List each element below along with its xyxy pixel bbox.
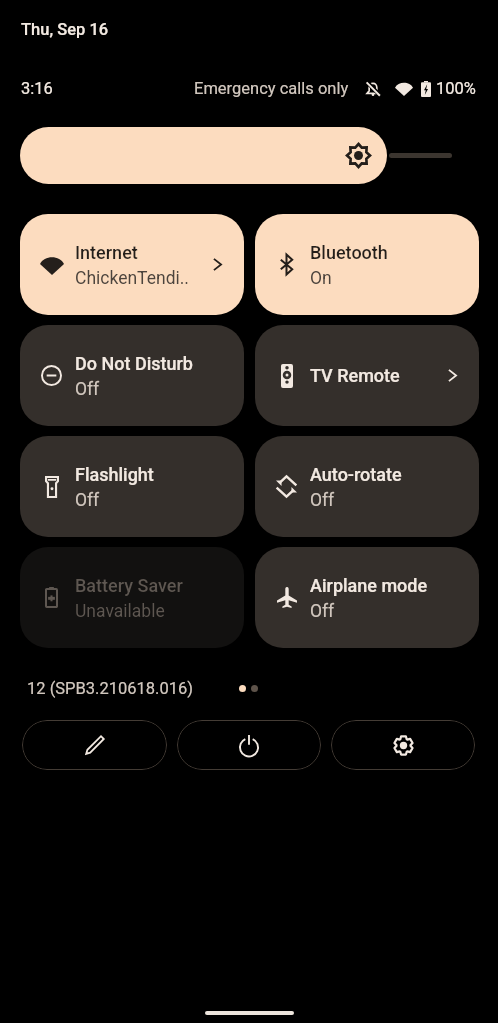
button[interactable]: Auto-rotate [255,436,479,537]
button[interactable]: Flashlight [20,436,244,537]
button[interactable]: Do Not Disturb [20,325,244,426]
staticText: Flashlight [75,464,154,485]
staticText: 3:16 [21,79,53,98]
button[interactable]: Power [177,720,321,770]
button[interactable]: Bluetooth [255,214,479,315]
button[interactable]: TV Remote [255,325,479,426]
staticText: Off [310,490,335,511]
button[interactable]: Airplane mode [255,547,479,648]
staticText: ChickenTendi.. [75,268,189,289]
staticText: Auto-rotate [310,464,402,485]
staticText: Off [310,601,335,622]
staticText: Battery Saver [75,575,183,596]
staticText: Off [75,379,100,400]
staticText: Unavailable [75,601,165,622]
staticText: Emergency calls only [194,79,349,98]
staticText: Do Not Disturb [75,353,193,374]
staticText: Off [75,490,100,511]
button[interactable]: Internet [20,214,244,315]
staticText: On [310,268,332,289]
staticText: Thu, Sep 16 [21,20,109,39]
button[interactable]: Settings [331,720,475,770]
button[interactable]: Battery Saver [20,547,244,648]
staticText: Internet [75,242,138,263]
staticText: Airplane mode [310,575,428,596]
staticText: 12 (SPB3.210618.016) [27,679,193,698]
staticText: 100% [436,79,476,98]
button[interactable]: Edit [22,720,167,770]
staticText: TV Remote [310,365,400,386]
staticText: Bluetooth [310,242,388,263]
button[interactable]: Brightness [20,127,387,184]
